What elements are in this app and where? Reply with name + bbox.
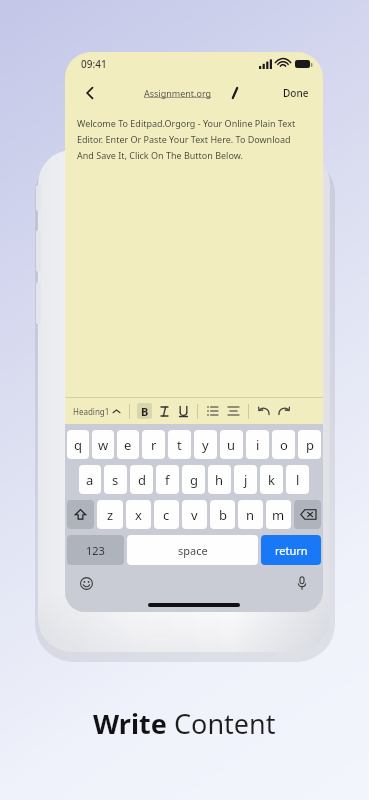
- button[interactable]: z: [97, 500, 123, 529]
- button[interactable]: Underline: [176, 403, 190, 419]
- staticText: c: [163, 506, 170, 524]
- staticText: u: [227, 436, 236, 454]
- staticText: B: [141, 404, 149, 419]
- staticText: l: [296, 471, 300, 489]
- button[interactable]: Backspace: [294, 500, 321, 529]
- staticText: t: [177, 436, 182, 454]
- button[interactable]: d: [130, 465, 153, 494]
- button[interactable]: y: [194, 430, 217, 459]
- button[interactable]: Redo: [276, 403, 291, 419]
- button[interactable]: c: [154, 500, 179, 529]
- button[interactable]: Bold: [137, 403, 152, 419]
- button[interactable]: space: [127, 535, 258, 565]
- button[interactable]: a: [79, 465, 101, 494]
- staticText: Heading1: [73, 406, 110, 417]
- button[interactable]: 123: [67, 535, 124, 565]
- button[interactable]: g: [182, 465, 205, 494]
- button[interactable]: w: [92, 430, 114, 459]
- button[interactable]: o: [272, 430, 295, 459]
- button[interactable]: l: [286, 465, 309, 494]
- button[interactable]: n: [238, 500, 263, 529]
- button[interactable]: Emoji: [77, 574, 95, 592]
- staticText: o: [280, 436, 288, 454]
- staticText: a: [86, 471, 94, 489]
- staticText: v: [191, 506, 198, 524]
- staticText: q: [74, 436, 82, 454]
- button[interactable]: p: [298, 430, 321, 459]
- staticText: n: [246, 506, 255, 524]
- staticText: s: [112, 471, 119, 489]
- button[interactable]: s: [104, 465, 127, 494]
- button[interactable]: r: [142, 430, 165, 459]
- button[interactable]: Undo: [256, 403, 271, 419]
- button[interactable]: h: [208, 465, 231, 494]
- button[interactable]: Italic: [157, 403, 171, 419]
- button[interactable]: u: [220, 430, 243, 459]
- button[interactable]: Assignment.org: [144, 87, 240, 99]
- staticText: y: [202, 436, 209, 454]
- staticText: k: [268, 471, 275, 489]
- button[interactable]: q: [67, 430, 89, 459]
- staticText: b: [219, 506, 227, 524]
- staticText: x: [135, 506, 142, 524]
- button[interactable]: f: [156, 465, 179, 494]
- button[interactable]: x: [126, 500, 151, 529]
- staticText: 09:41: [81, 57, 107, 71]
- staticText: m: [272, 506, 285, 524]
- staticText: r: [151, 436, 157, 454]
- button[interactable]: k: [260, 465, 283, 494]
- staticText: Welcome To Editpad.Orgorg - Your Online …: [77, 117, 309, 161]
- staticText: j: [244, 471, 248, 489]
- staticText: Content: [174, 705, 276, 742]
- button[interactable]: b: [210, 500, 235, 529]
- staticText: Write: [93, 705, 174, 742]
- button[interactable]: Back: [79, 82, 101, 104]
- staticText: f: [165, 471, 170, 489]
- staticText: g: [190, 471, 198, 489]
- button[interactable]: Dictate: [293, 574, 311, 592]
- button[interactable]: Done: [283, 86, 309, 100]
- staticText: space: [178, 543, 208, 558]
- staticText: e: [124, 436, 132, 454]
- button[interactable]: Align: [226, 403, 241, 419]
- staticText: p: [306, 436, 314, 454]
- staticText: i: [256, 436, 260, 454]
- staticText: 123: [86, 543, 105, 558]
- staticText: return: [275, 543, 308, 558]
- button[interactable]: Shift: [67, 500, 94, 529]
- staticText: Assignment.org: [144, 87, 212, 99]
- staticText: w: [98, 436, 109, 454]
- button[interactable]: Bulleted list: [205, 403, 220, 419]
- button[interactable]: return: [261, 535, 321, 565]
- button[interactable]: Heading1: [73, 406, 120, 417]
- staticText: h: [215, 471, 224, 489]
- button[interactable]: v: [182, 500, 207, 529]
- button[interactable]: i: [246, 430, 269, 459]
- button[interactable]: e: [117, 430, 139, 459]
- staticText: Done: [283, 86, 309, 100]
- button[interactable]: t: [168, 430, 191, 459]
- button[interactable]: m: [266, 500, 291, 529]
- button[interactable]: j: [234, 465, 257, 494]
- staticText: d: [138, 471, 146, 489]
- staticText: z: [107, 506, 114, 524]
